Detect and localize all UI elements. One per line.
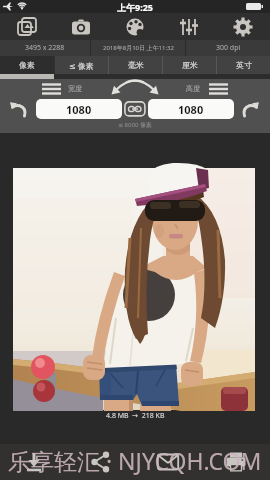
staticText: 宽度 <box>68 84 82 93</box>
button[interactable] <box>54 13 108 40</box>
staticText: 毫米 <box>128 60 144 70</box>
button[interactable] <box>67 444 134 480</box>
button[interactable]: ≤ 像素 <box>55 56 108 74</box>
button[interactable] <box>0 13 54 40</box>
button[interactable]: 像素 <box>0 56 54 74</box>
button[interactable]: 厘米 <box>163 56 216 74</box>
staticText: 3495 x 2288 <box>25 43 65 53</box>
staticText: 1080 <box>66 102 92 117</box>
button[interactable]: 1080 <box>148 99 234 119</box>
button[interactable] <box>209 83 228 95</box>
staticText: ≤ 8000 像素 <box>118 121 152 129</box>
button[interactable] <box>108 13 162 40</box>
staticText: 1080 <box>178 102 204 117</box>
button[interactable] <box>202 444 270 480</box>
staticText: 乐享轻汇 · NJYCQH.COM <box>8 445 262 476</box>
button[interactable] <box>42 83 61 95</box>
button[interactable] <box>10 100 29 119</box>
staticText: 300 dpi <box>216 43 241 53</box>
button[interactable] <box>240 100 259 119</box>
staticText: 上午9:25 <box>117 1 153 13</box>
button[interactable]: 1080 <box>36 99 122 119</box>
staticText: 高度 <box>186 84 200 93</box>
staticText: 厘米 <box>182 60 198 70</box>
button[interactable] <box>216 13 270 40</box>
staticText: ≤ 像素 <box>69 60 94 71</box>
button[interactable] <box>162 13 216 40</box>
button[interactable] <box>124 101 146 117</box>
staticText: 英寸 <box>236 60 252 70</box>
staticText: 像素 <box>19 60 35 70</box>
staticText: 2018年8月10日 上午11:32 <box>103 44 174 52</box>
staticText: 4.8 MB → 218 KB <box>106 411 165 421</box>
button[interactable]: 英寸 <box>217 56 270 74</box>
button[interactable]: 毫米 <box>109 56 162 74</box>
button[interactable] <box>134 444 202 480</box>
button[interactable] <box>0 444 67 480</box>
